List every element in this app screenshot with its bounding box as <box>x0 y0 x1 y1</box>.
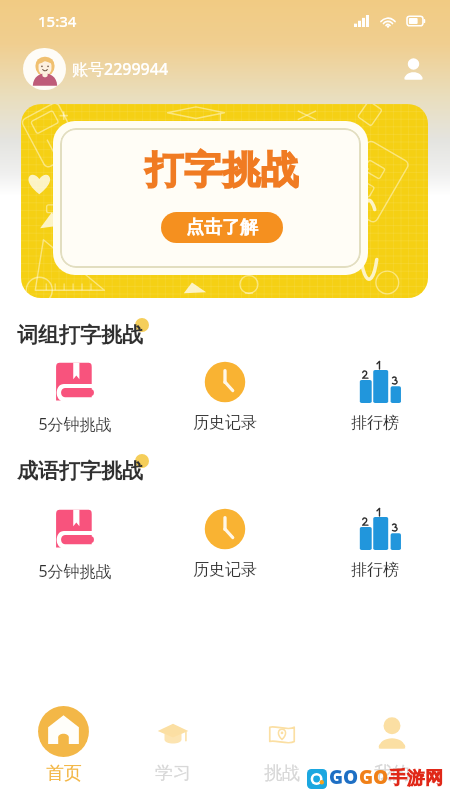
button[interactable]: 首页 <box>9 696 118 800</box>
button[interactable]: 历史记录 <box>150 360 300 433</box>
staticText: 成语打字挑战 <box>17 458 143 484</box>
button[interactable]: 排行榜 <box>300 507 450 580</box>
button[interactable]: Avatar <box>23 48 66 90</box>
staticText: 打字挑战 <box>145 146 299 194</box>
button[interactable]: 排行榜 <box>300 360 450 433</box>
staticText: 历史记录 <box>193 560 257 580</box>
button[interactable]: Profile <box>396 52 430 86</box>
staticText: 账号2299944 <box>72 58 169 80</box>
staticText: 点击了解 <box>186 216 258 239</box>
staticText: 挑战 <box>264 762 300 785</box>
button[interactable]: 5分钟挑战 <box>0 507 150 582</box>
staticText: 5分钟挑战 <box>38 413 112 435</box>
staticText: 我的 <box>374 762 410 785</box>
button[interactable]: 点击了解 <box>161 212 283 243</box>
staticText: 首页 <box>46 762 82 785</box>
staticText: 历史记录 <box>193 413 257 433</box>
staticText: 15:34 <box>38 11 77 31</box>
button[interactable]: 5分钟挑战 <box>0 360 150 435</box>
staticText: GO <box>359 764 389 790</box>
staticText: 学习 <box>155 762 191 785</box>
staticText: 排行榜 <box>351 413 399 433</box>
staticText: 词组打字挑战 <box>17 322 143 348</box>
staticText: GO <box>329 764 359 790</box>
staticText: 5分钟挑战 <box>38 560 112 582</box>
button[interactable]: 学习 <box>118 696 227 800</box>
button[interactable]: 挑战 <box>227 696 337 800</box>
button[interactable]: 打字挑战 <box>21 104 428 298</box>
staticText: 排行榜 <box>351 560 399 580</box>
staticText: 手游网 <box>389 767 443 790</box>
button[interactable]: 历史记录 <box>150 507 300 580</box>
button[interactable]: 我的 <box>337 696 447 800</box>
